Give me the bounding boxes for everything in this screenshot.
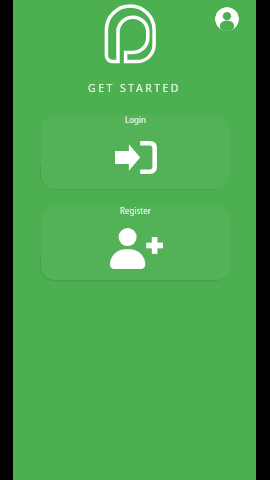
button[interactable]: Register xyxy=(41,206,230,280)
staticText: Register xyxy=(120,206,152,216)
button[interactable]: Account xyxy=(215,7,239,31)
staticText: GET STARTED xyxy=(13,81,256,95)
button[interactable]: Log in xyxy=(41,115,230,189)
staticText: Login xyxy=(125,115,146,125)
